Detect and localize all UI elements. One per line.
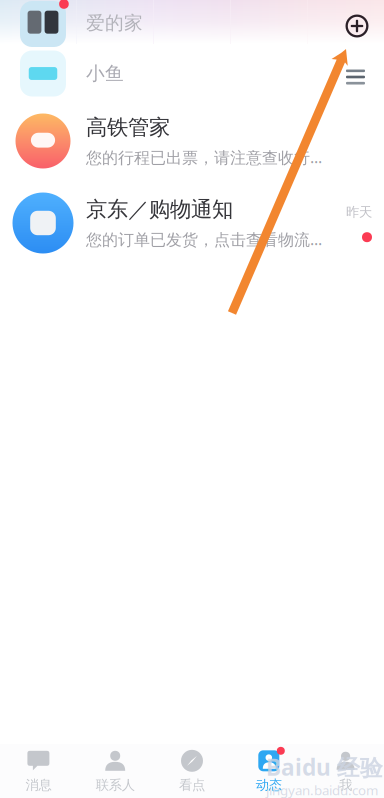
staticText: 爱的家 [86, 11, 143, 34]
staticText: 动态 [256, 777, 282, 793]
button[interactable]: 联系人 [77, 747, 154, 795]
staticText: 我 [339, 777, 352, 793]
button[interactable]: 高铁管家 [0, 101, 384, 181]
button[interactable]: 爱的家 [0, 0, 384, 46]
staticText: 消息 [25, 777, 51, 793]
staticText: 联系人 [96, 777, 135, 793]
staticText: 您的行程已出票，请注意查收行程单 [86, 146, 326, 168]
button[interactable]: 我 [307, 747, 384, 795]
button[interactable]: 消息 [0, 747, 77, 795]
staticText: 看点 [179, 777, 205, 793]
staticText: 高铁管家 [86, 114, 170, 140]
staticText: jingyan.baidu.com [266, 781, 378, 798]
staticText: 小鱼 [86, 62, 124, 85]
button[interactable]: 看点 [154, 747, 230, 795]
staticText: Baidu 经验 [266, 752, 383, 782]
staticText: 您的订单已发货，点击查看物流详情… [86, 228, 326, 250]
button[interactable]: 动态 [230, 747, 307, 795]
button[interactable]: 小鱼 [0, 46, 384, 101]
staticText: 京东／购物通知 [86, 196, 233, 222]
button[interactable]: 京东／购物通知 [0, 181, 384, 265]
staticText: 昨天 [346, 204, 372, 220]
